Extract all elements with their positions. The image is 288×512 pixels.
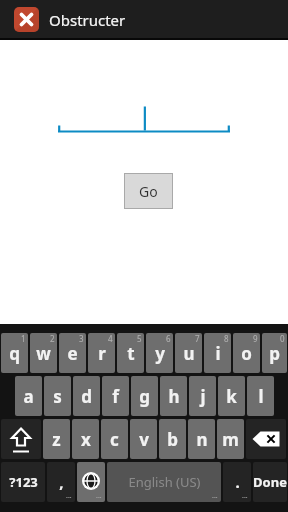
staticText: 8 xyxy=(224,333,229,344)
staticText: d xyxy=(81,385,92,408)
button[interactable]: f xyxy=(102,376,129,416)
staticText: h xyxy=(168,385,180,408)
other: Obstructer icon xyxy=(14,7,39,32)
button[interactable]: u xyxy=(175,333,202,373)
button[interactable]: Symbols xyxy=(1,462,45,502)
staticText: Done xyxy=(253,473,287,491)
staticText: 0 xyxy=(280,333,285,344)
staticText: i xyxy=(215,342,221,365)
staticText: z xyxy=(52,428,61,451)
staticText: o xyxy=(241,342,252,365)
staticText: k xyxy=(226,385,237,408)
staticText: 6 xyxy=(166,333,171,344)
staticText: . xyxy=(235,472,240,492)
staticText: s xyxy=(53,385,62,408)
staticText: 1 xyxy=(21,333,26,344)
staticText: 5 xyxy=(137,333,142,344)
button[interactable]: z xyxy=(43,419,70,459)
staticText: e xyxy=(67,342,78,365)
staticText: m xyxy=(222,428,239,451)
staticText: English (US) xyxy=(128,473,201,491)
button[interactable]: l xyxy=(247,376,274,416)
staticText: v xyxy=(139,428,149,451)
button[interactable]: d xyxy=(73,376,100,416)
button[interactable]: Space xyxy=(107,462,221,502)
button[interactable]: i xyxy=(204,333,231,373)
button[interactable]: Comma xyxy=(47,462,75,502)
staticText: a xyxy=(23,385,34,408)
staticText: 2 xyxy=(50,333,55,344)
staticText: t xyxy=(127,342,135,365)
staticText: r xyxy=(98,342,106,365)
staticText: ... xyxy=(242,491,248,501)
staticText: ... xyxy=(96,491,102,501)
staticText: j xyxy=(200,385,206,408)
button[interactable]: y xyxy=(146,333,173,373)
staticText: 4 xyxy=(108,333,113,344)
button[interactable] xyxy=(58,102,230,134)
button[interactable]: s xyxy=(44,376,71,416)
button[interactable]: r xyxy=(88,333,115,373)
staticText: y xyxy=(155,342,165,365)
staticText: ... xyxy=(66,491,72,501)
staticText: c xyxy=(110,428,119,451)
button[interactable]: e xyxy=(59,333,86,373)
button[interactable]: Done xyxy=(253,462,287,502)
button[interactable]: Backspace xyxy=(246,419,286,459)
staticText: ... xyxy=(212,491,218,501)
staticText: q xyxy=(9,342,20,365)
button[interactable]: p xyxy=(262,333,287,373)
button[interactable]: q xyxy=(1,333,28,373)
button[interactable]: k xyxy=(218,376,245,416)
button[interactable]: j xyxy=(189,376,216,416)
button[interactable]: Change language xyxy=(77,462,105,502)
button[interactable]: Go xyxy=(125,174,172,208)
button[interactable]: h xyxy=(160,376,187,416)
staticText: l xyxy=(258,385,264,408)
staticText: 3 xyxy=(79,333,84,344)
staticText: Go xyxy=(139,182,158,201)
button[interactable]: o xyxy=(233,333,260,373)
staticText: 7 xyxy=(195,333,200,344)
staticText: w xyxy=(36,342,51,365)
button[interactable]: n xyxy=(188,419,215,459)
button[interactable]: Shift xyxy=(1,419,41,459)
button[interactable]: w xyxy=(30,333,57,373)
button[interactable]: x xyxy=(72,419,99,459)
staticText: p xyxy=(269,342,280,365)
button[interactable]: v xyxy=(130,419,157,459)
staticText: 9 xyxy=(253,333,258,344)
staticText: x xyxy=(81,428,91,451)
button[interactable]: c xyxy=(101,419,128,459)
staticText: b xyxy=(167,428,178,451)
button[interactable]: b xyxy=(159,419,186,459)
staticText: , xyxy=(59,472,64,492)
button[interactable]: g xyxy=(131,376,158,416)
button[interactable]: t xyxy=(117,333,144,373)
staticText: f xyxy=(112,385,119,408)
staticText: ?123 xyxy=(9,473,38,491)
button[interactable]: Period xyxy=(223,462,251,502)
button[interactable]: a xyxy=(15,376,42,416)
staticText: Obstructer xyxy=(49,10,126,30)
staticText: g xyxy=(139,385,150,408)
button[interactable]: m xyxy=(217,419,244,459)
staticText: u xyxy=(183,342,195,365)
staticText: n xyxy=(196,428,208,451)
